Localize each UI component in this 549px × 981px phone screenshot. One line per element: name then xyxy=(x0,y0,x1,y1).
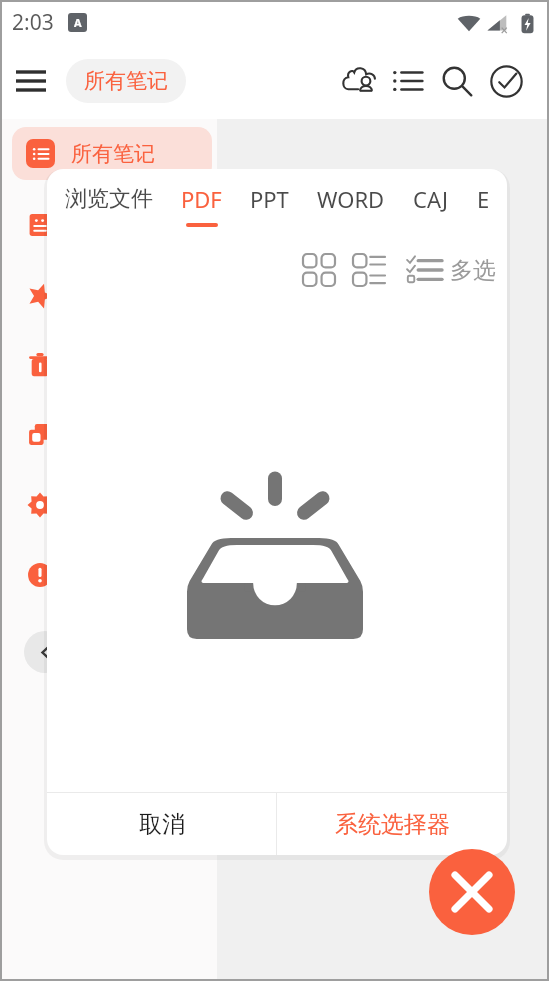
staticText: PPT xyxy=(250,184,289,214)
button[interactable]: Drawer item xyxy=(27,212,53,238)
staticText: WORD xyxy=(317,184,385,214)
button[interactable]: Drawer item xyxy=(27,352,53,378)
button[interactable]: E xyxy=(463,174,504,227)
button[interactable]: 浏览文件 xyxy=(51,175,167,226)
button[interactable]: Select xyxy=(483,58,529,104)
button[interactable]: Cloud account xyxy=(336,58,382,104)
button[interactable]: Collapse xyxy=(24,631,66,673)
button[interactable]: List view xyxy=(346,247,392,293)
staticText: 取消 xyxy=(139,810,185,839)
button[interactable]: Drawer item xyxy=(27,282,53,308)
staticText: 2:03 xyxy=(12,8,54,37)
staticText: PDF xyxy=(181,184,222,214)
button[interactable]: Close xyxy=(429,849,515,935)
button[interactable]: CAJ xyxy=(399,174,463,227)
button[interactable]: 系统选择器 xyxy=(277,793,507,855)
staticText: 浏览文件 xyxy=(65,185,153,213)
button[interactable]: 所有笔记 xyxy=(66,59,186,103)
button[interactable]: Drawer item xyxy=(27,492,53,518)
staticText: 所有笔记 xyxy=(84,68,168,94)
button[interactable]: List xyxy=(385,58,431,104)
button[interactable]: Grid view xyxy=(296,247,342,293)
staticText: 所有笔记 xyxy=(71,141,155,167)
button[interactable]: 所有笔记 xyxy=(12,127,212,180)
button[interactable]: Drawer item xyxy=(27,422,53,448)
staticText: 系统选择器 xyxy=(335,810,450,839)
button[interactable]: Menu xyxy=(8,58,54,104)
button[interactable]: 多选 xyxy=(406,246,496,294)
button[interactable]: PDF xyxy=(167,174,236,227)
button[interactable]: WORD xyxy=(303,174,399,227)
button[interactable]: 取消 xyxy=(47,793,276,855)
button[interactable]: PPT xyxy=(236,174,303,227)
staticText: 多选 xyxy=(450,256,496,285)
staticText: CAJ xyxy=(413,184,449,214)
button[interactable]: Search xyxy=(434,58,480,104)
staticText: E xyxy=(477,184,490,214)
button[interactable]: Drawer item xyxy=(27,562,53,588)
staticText: A xyxy=(74,15,82,30)
